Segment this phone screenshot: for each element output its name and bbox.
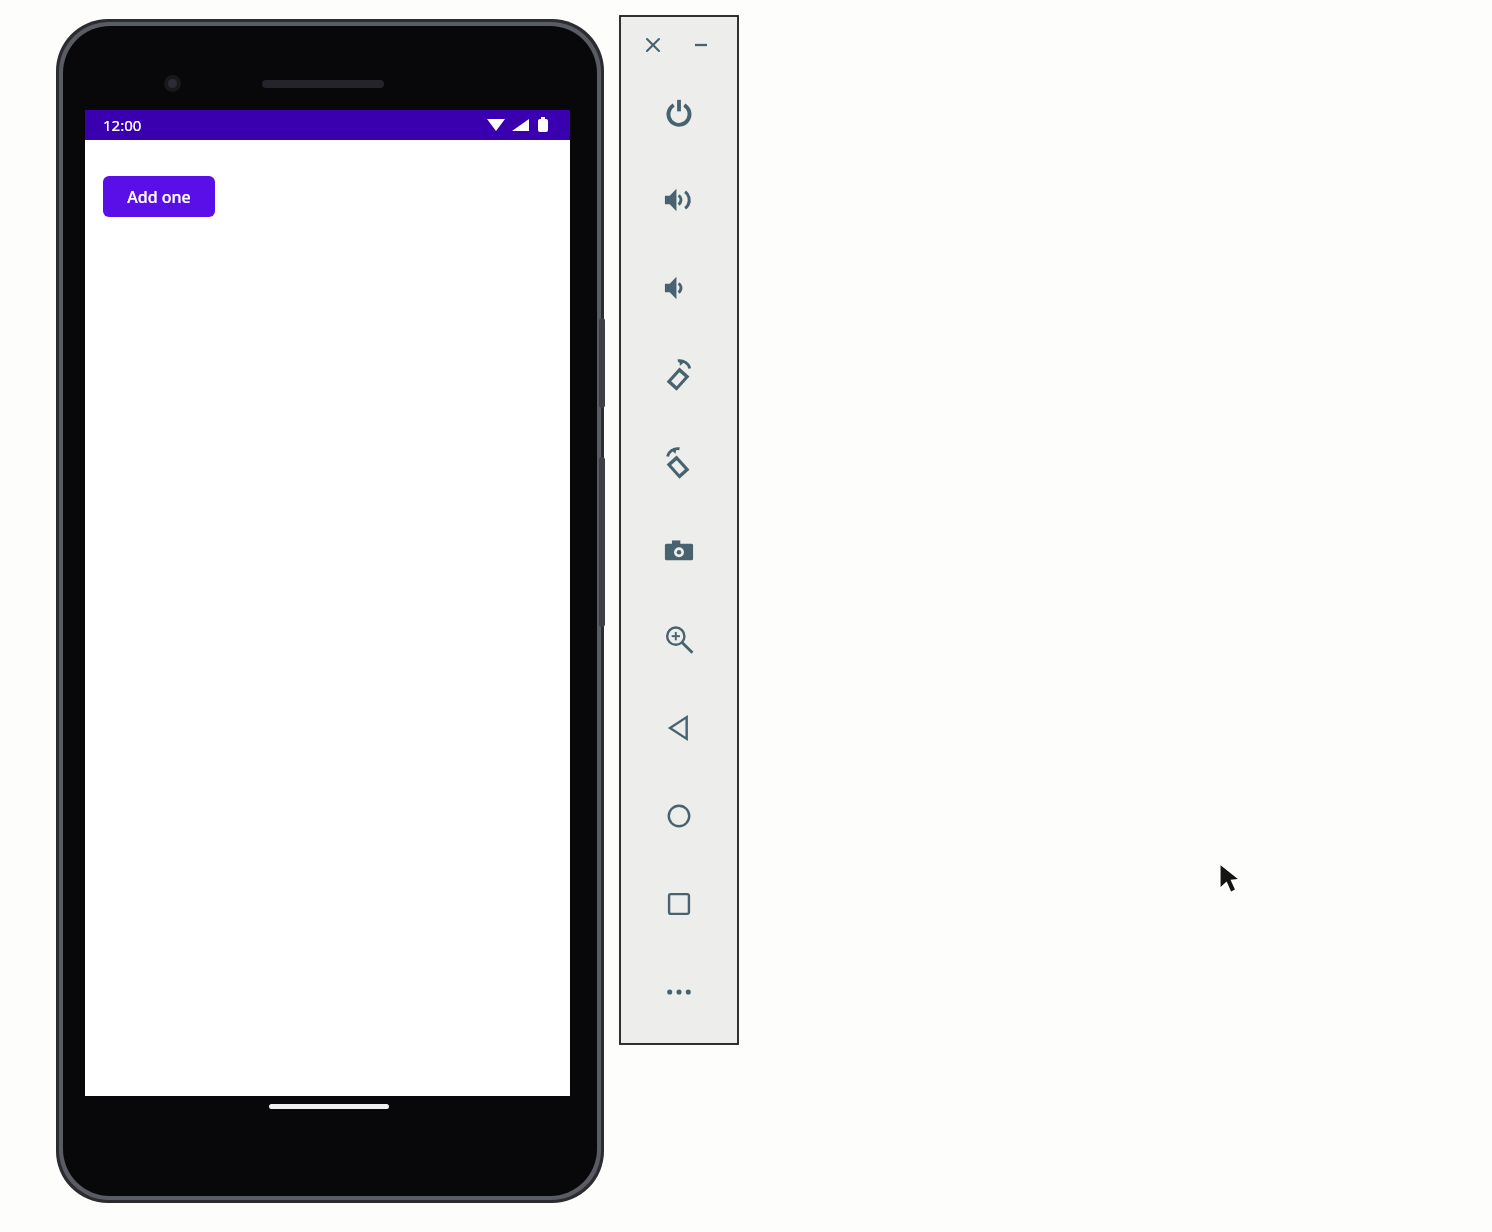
button[interactable]: Power (651, 84, 707, 140)
button[interactable]: Add one (103, 176, 215, 217)
button[interactable]: Home (651, 788, 707, 844)
button[interactable]: Take screenshot (651, 523, 707, 579)
button[interactable]: Zoom in (651, 612, 707, 668)
button[interactable]: Rotate left (651, 348, 707, 404)
button[interactable]: Back (651, 700, 707, 756)
button[interactable]: Close (638, 30, 668, 60)
button[interactable]: Volume down (651, 260, 707, 316)
staticText: 12:00 (103, 115, 142, 135)
button[interactable]: Volume up (651, 172, 707, 228)
staticText: Add one (127, 186, 191, 208)
button[interactable]: Rotate right (651, 436, 707, 492)
button[interactable]: More options (651, 964, 707, 1020)
button[interactable]: Minimize (686, 30, 716, 60)
button[interactable]: Overview (651, 876, 707, 932)
